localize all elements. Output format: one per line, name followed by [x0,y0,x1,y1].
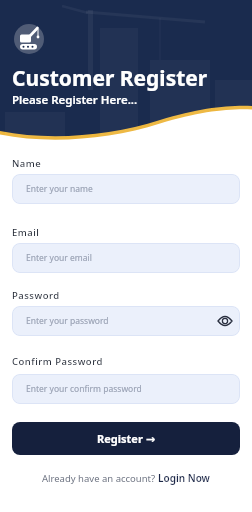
staticText: Register → [97,431,155,446]
staticText: Password [12,289,60,302]
staticText: Name [12,157,42,170]
staticText: Customer Register [12,64,208,93]
button[interactable]: Enter your name [12,174,240,204]
staticText: Login Now [158,471,210,485]
staticText: Enter your email [26,252,92,264]
staticText: Enter your confirm password [26,383,142,395]
button[interactable]: Enter your confirm password [12,374,240,404]
staticText: Please Register Here... [12,92,138,108]
button[interactable]: Already have an account? [42,471,210,485]
staticText: Email [12,226,40,239]
button[interactable]: Enter your email [12,243,240,273]
staticText: Confirm Password [12,355,103,368]
staticText: Already have an account? [42,472,158,485]
button[interactable]: Register → [12,422,240,455]
button[interactable]: Enter your password [12,306,240,336]
staticText: Enter your name [26,183,93,195]
staticText: Enter your password [26,315,109,327]
